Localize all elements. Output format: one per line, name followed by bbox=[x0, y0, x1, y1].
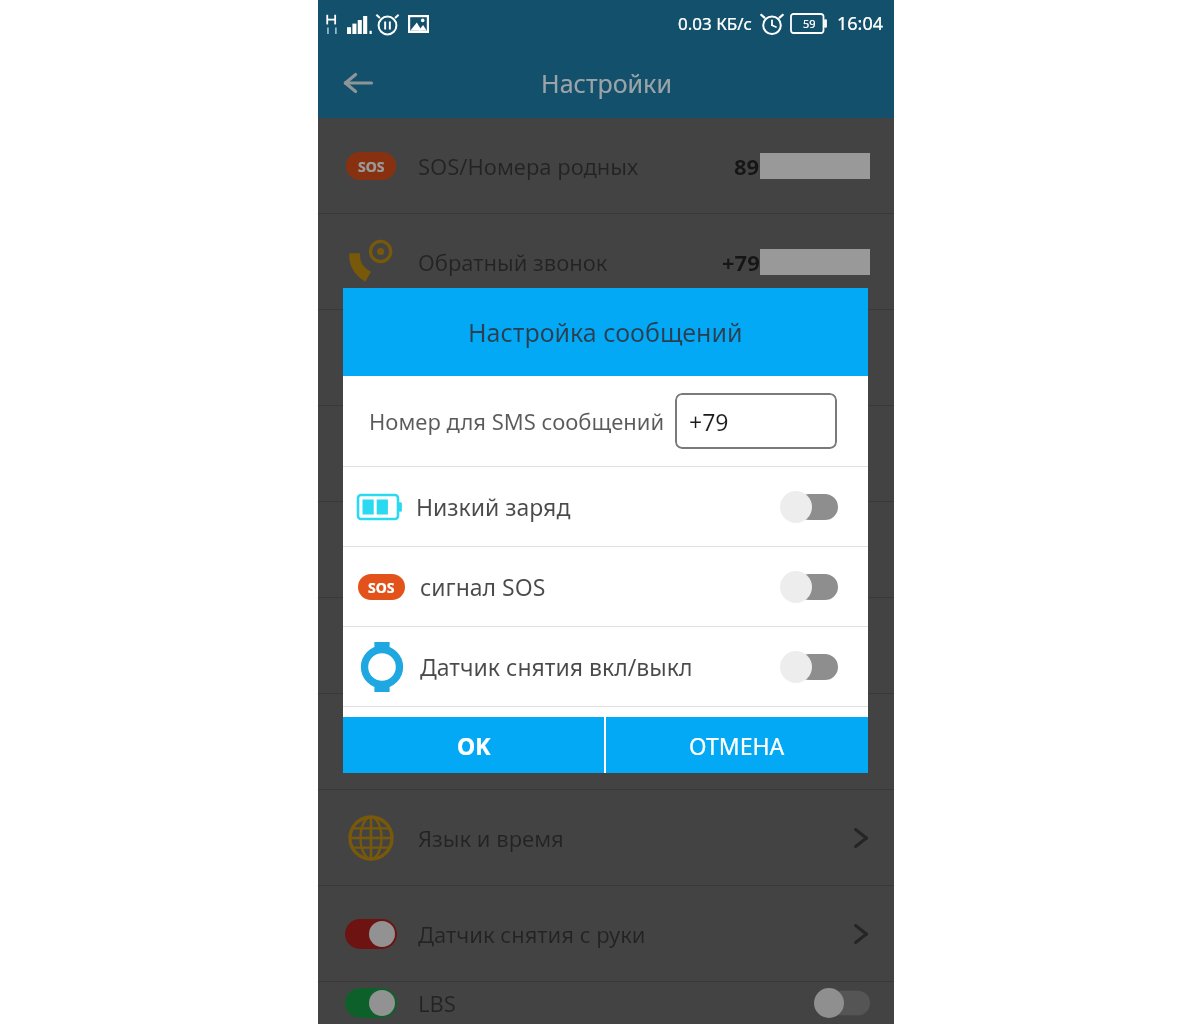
button[interactable]: OK bbox=[343, 717, 604, 773]
staticText: Настройки bbox=[541, 66, 672, 100]
staticText: Низкий заряд bbox=[416, 491, 571, 522]
staticText: SOS/Номера родных bbox=[418, 151, 639, 181]
button[interactable]: Toggle bbox=[780, 571, 838, 603]
button[interactable]: LBS bbox=[318, 982, 894, 1024]
button[interactable]: Язык и время bbox=[318, 790, 894, 885]
staticText: Язык и время bbox=[418, 823, 564, 853]
staticText: +79 bbox=[689, 406, 729, 437]
button[interactable]: ОТМЕНА bbox=[606, 717, 868, 773]
button[interactable]: Низкий заряд bbox=[343, 467, 868, 546]
button[interactable]: Toggle bbox=[780, 491, 838, 523]
button[interactable]: Toggle bbox=[780, 651, 838, 683]
button[interactable]: SOS bbox=[318, 118, 894, 213]
staticText: OK bbox=[457, 730, 491, 761]
staticText: ОТМЕНА bbox=[689, 730, 785, 761]
button[interactable]: SOS bbox=[343, 547, 868, 626]
staticText: Настройка сообщений bbox=[468, 315, 743, 349]
button[interactable]: Back bbox=[330, 55, 386, 111]
staticText: 16:04 bbox=[837, 11, 884, 36]
staticText: Настройки bbox=[541, 66, 672, 100]
button[interactable]: Датчик снятия с руки bbox=[318, 886, 894, 981]
button[interactable]: Обратный звонок bbox=[318, 214, 894, 309]
button[interactable]: Toggle bbox=[814, 988, 870, 1018]
button[interactable]: +79 bbox=[675, 393, 837, 449]
staticText: Датчик снятия вкл/выкл bbox=[420, 651, 693, 682]
staticText: 59 bbox=[803, 16, 816, 31]
staticText: сигнал SOS bbox=[420, 571, 546, 602]
staticText: +79 bbox=[722, 247, 760, 277]
staticText: SOS bbox=[368, 578, 395, 597]
staticText: Номер для SMS сообщений bbox=[369, 406, 665, 436]
button[interactable]: Датчик снятия вкл/выкл bbox=[343, 627, 868, 706]
staticText: 0.03 КБ/с bbox=[678, 12, 752, 35]
staticText: 0.03 КБ/с bbox=[678, 12, 752, 35]
staticText: SOS bbox=[358, 157, 385, 176]
staticText: Обратный звонок bbox=[418, 247, 608, 277]
staticText: LBS bbox=[418, 988, 456, 1018]
staticText: 89 bbox=[734, 151, 760, 181]
button[interactable]: Back bbox=[330, 55, 386, 111]
staticText: Датчик снятия с руки bbox=[418, 919, 646, 949]
staticText: 59 bbox=[803, 16, 816, 31]
staticText: 16:04 bbox=[837, 11, 884, 36]
